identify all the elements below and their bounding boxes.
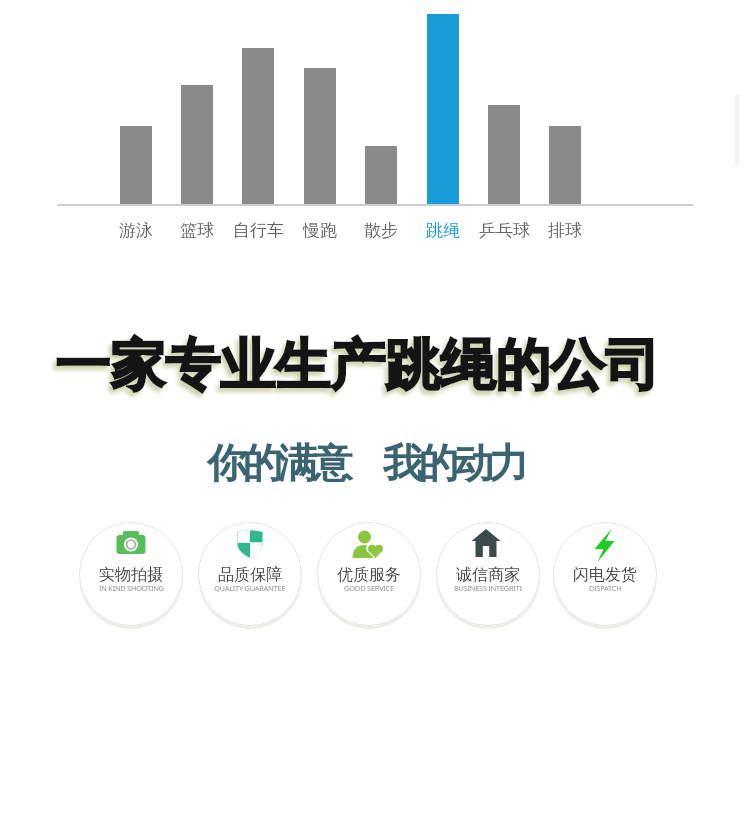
staticText: 慢跑 bbox=[303, 220, 337, 241]
staticText: BUSINESS INTEGRITI bbox=[454, 583, 522, 593]
staticText: 散步 bbox=[364, 220, 398, 241]
staticText: GOOD SERVICE bbox=[344, 583, 394, 593]
staticText: 篮球 bbox=[180, 220, 214, 241]
button[interactable]: 优质服务 bbox=[317, 522, 421, 626]
staticText: 排球 bbox=[548, 220, 582, 241]
staticText: 品质保障 bbox=[218, 565, 282, 585]
button[interactable]: 闪电发货 bbox=[553, 522, 657, 626]
button[interactable]: 跳绳 bbox=[398, 218, 488, 242]
staticText: 游泳 bbox=[119, 220, 153, 241]
button[interactable]: 篮球 bbox=[152, 218, 242, 242]
staticText: IN KIND SHOOTING bbox=[99, 583, 164, 593]
staticText: 你的满意 我的动力 bbox=[207, 434, 524, 486]
button[interactable]: 排球 bbox=[520, 218, 610, 242]
staticText: 实物拍摄 bbox=[99, 565, 163, 585]
button[interactable]: 游泳 bbox=[91, 218, 181, 242]
staticText: 优质服务 bbox=[337, 565, 401, 585]
button[interactable]: 散步 bbox=[336, 218, 426, 242]
staticText: 乒乓球 bbox=[479, 220, 530, 241]
staticText: QUALITY GUARANTEE bbox=[214, 583, 286, 593]
button[interactable]: 品质保障 bbox=[198, 522, 302, 626]
staticText: DISPATCH bbox=[589, 583, 622, 593]
button[interactable]: 乒乓球 bbox=[459, 218, 549, 242]
staticText: 诚信商家 bbox=[456, 565, 520, 585]
button[interactable]: 自行车 bbox=[213, 218, 303, 242]
button[interactable]: 诚信商家 bbox=[436, 522, 540, 626]
staticText: 跳绳 bbox=[426, 220, 460, 241]
button[interactable]: 实物拍摄 bbox=[79, 522, 183, 626]
staticText: 自行车 bbox=[233, 220, 284, 241]
button[interactable]: 慢跑 bbox=[275, 218, 365, 242]
staticText: 闪电发货 bbox=[573, 565, 637, 585]
staticText: 一家专业生产跳绳的公司 bbox=[55, 331, 660, 400]
